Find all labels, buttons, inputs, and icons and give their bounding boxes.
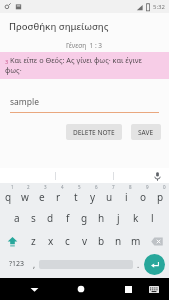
staticText: a (14, 211, 20, 225)
staticText: m (131, 234, 141, 248)
button[interactable]: Home (73, 281, 89, 297)
staticText: q (5, 190, 12, 204)
staticText: c (65, 234, 70, 248)
staticText: DELETE NOTE (73, 128, 115, 137)
button[interactable]: a (8, 208, 25, 228)
button[interactable]: 4 (50, 184, 67, 205)
staticText: k (133, 211, 139, 225)
staticText: 5:32 (153, 3, 165, 11)
button[interactable]: DELETE NOTE (66, 124, 122, 140)
staticText: 7 (112, 184, 115, 190)
staticText: d (47, 211, 54, 225)
staticText: g (81, 211, 88, 225)
staticText: f (66, 211, 70, 225)
staticText: b (98, 234, 105, 248)
staticText: SAVE (138, 128, 154, 137)
staticText: Γένεση 1 : 3 (66, 41, 103, 50)
button[interactable]: Recent apps (120, 281, 136, 297)
button[interactable]: n (110, 231, 127, 251)
staticText: t (74, 190, 78, 204)
staticText: i (125, 190, 128, 204)
staticText: v (82, 234, 88, 248)
staticText: 0 (163, 184, 166, 190)
button[interactable]: Voice input (151, 170, 163, 182)
staticText: e (39, 190, 45, 204)
button[interactable]: h (93, 208, 110, 228)
button[interactable]: . (133, 254, 144, 274)
button[interactable]: 8 (118, 184, 135, 205)
button[interactable]: SAVE (131, 124, 161, 140)
staticText: 4 (61, 184, 64, 190)
staticText: 3 (44, 184, 47, 190)
staticText: 1 (11, 184, 14, 190)
button[interactable]: sample (10, 96, 159, 113)
staticText: x (48, 234, 54, 248)
button[interactable]: 3 (0, 52, 169, 79)
staticText: , (33, 259, 36, 270)
button[interactable]: c (59, 231, 76, 251)
button[interactable]: g (76, 208, 93, 228)
staticText: 9 (146, 184, 149, 190)
staticText: h (98, 211, 105, 225)
button[interactable]: s (25, 208, 42, 228)
button[interactable]: 1 (0, 184, 16, 205)
staticText: φως· (5, 65, 22, 75)
button[interactable]: Backspace (144, 231, 169, 251)
button[interactable]: d (42, 208, 59, 228)
staticText: l (151, 211, 154, 225)
button[interactable]: 7 (101, 184, 118, 205)
staticText: 2 (27, 184, 30, 190)
button[interactable]: 3 (33, 184, 50, 205)
button[interactable]: l (144, 208, 161, 228)
staticText: w (21, 190, 29, 204)
staticText: y (90, 190, 96, 204)
button[interactable]: 2 (16, 184, 33, 205)
button[interactable]: Προσθήκη σημείωσης (0, 13, 169, 39)
button[interactable]: b (93, 231, 110, 251)
button[interactable]: , (30, 254, 39, 274)
button[interactable]: 9 (135, 184, 152, 205)
button[interactable]: f (59, 208, 76, 228)
button[interactable]: 5 (67, 184, 84, 205)
staticText: . (137, 259, 140, 270)
button[interactable]: 0 (152, 184, 169, 205)
staticText: 8 (129, 184, 132, 190)
button[interactable]: ?123 (4, 254, 30, 274)
button[interactable]: m (127, 231, 144, 251)
staticText: p (157, 190, 164, 204)
staticText: sample (10, 96, 40, 108)
button[interactable]: v (76, 231, 93, 251)
staticText: Προσθήκη σημείωσης (9, 20, 109, 33)
button[interactable]: j (110, 208, 127, 228)
button[interactable]: x (42, 231, 59, 251)
staticText: z (31, 234, 36, 248)
button[interactable]: Switch keyboard (146, 281, 162, 297)
staticText: o (140, 190, 147, 204)
button[interactable]: k (127, 208, 144, 228)
staticText: 6 (95, 184, 98, 190)
staticText: 5 (78, 184, 81, 190)
button[interactable]: z (25, 231, 42, 251)
staticText: ?123 (9, 259, 25, 269)
staticText: n (115, 234, 122, 248)
button[interactable]: 6 (84, 184, 101, 205)
staticText: 3 (5, 58, 10, 65)
button[interactable]: Enter (144, 254, 165, 275)
staticText: r (56, 190, 61, 204)
staticText: Και είπε ο Θεός: Ας γίνει φως· και έγινε (10, 55, 142, 65)
staticText: s (31, 211, 36, 225)
staticText: u (106, 190, 113, 204)
button[interactable]: Back (26, 281, 42, 297)
button[interactable]: Shift (0, 231, 25, 251)
staticText: j (117, 211, 120, 225)
